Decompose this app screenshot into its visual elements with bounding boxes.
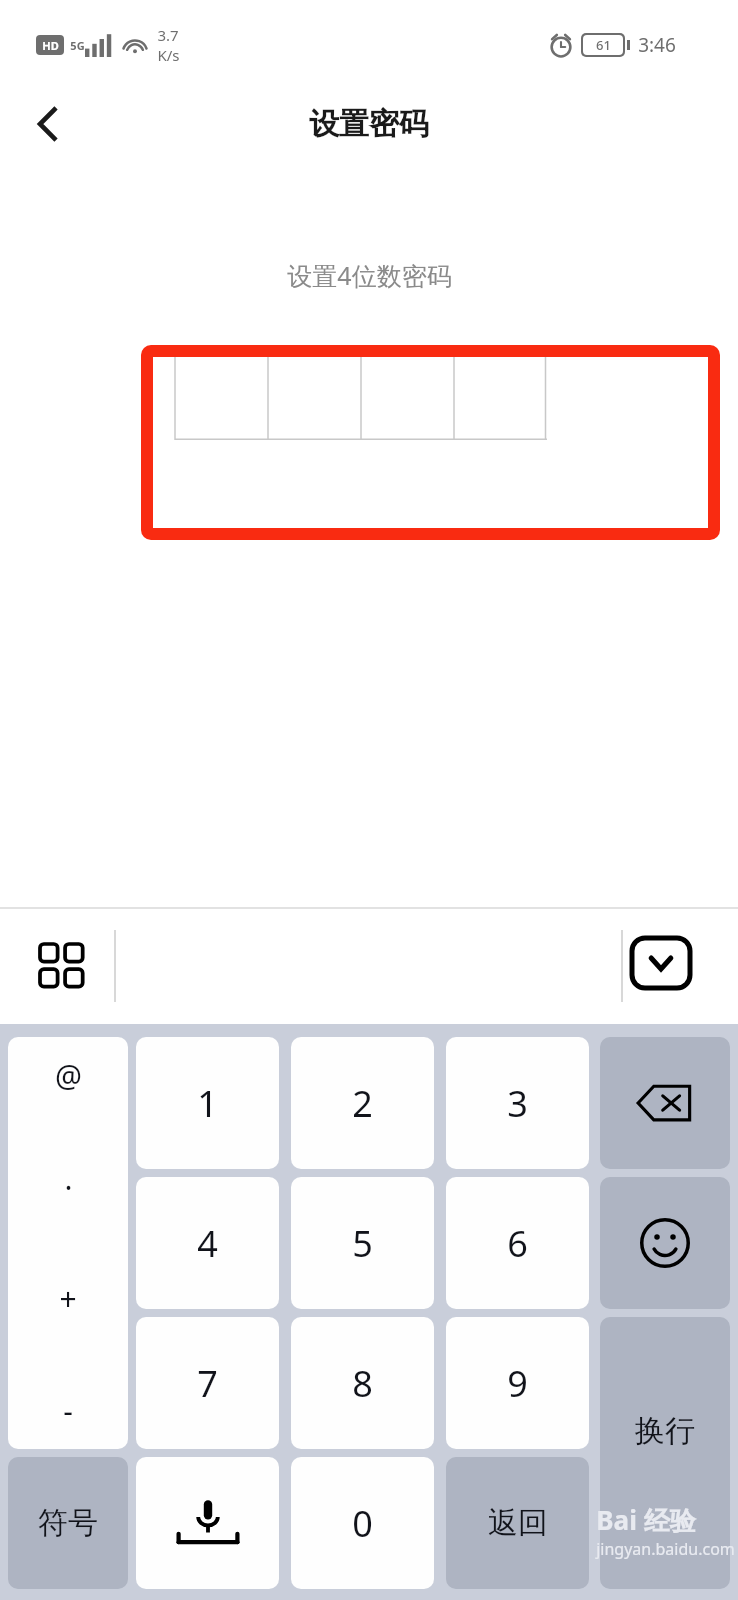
staticText: 换行 xyxy=(635,1412,695,1450)
staticText: 设置4位数密码 xyxy=(287,258,452,292)
button[interactable]: 2 xyxy=(291,1037,434,1169)
button[interactable]: Hide keyboard xyxy=(632,938,690,988)
button[interactable] xyxy=(454,357,547,440)
staticText: jingyan.baidu.com xyxy=(596,1538,735,1560)
staticText: 3 xyxy=(507,1079,528,1128)
staticText: @ xyxy=(55,1055,82,1096)
staticText: 3:46 xyxy=(638,32,676,58)
button[interactable]: Emoji xyxy=(600,1177,730,1309)
staticText: 0 xyxy=(352,1499,373,1548)
staticText: K/s xyxy=(157,45,180,65)
staticText: · xyxy=(64,1167,73,1208)
button[interactable] xyxy=(268,357,361,440)
button[interactable] xyxy=(153,357,708,528)
button[interactable]: 7 xyxy=(136,1317,279,1449)
staticText: - xyxy=(63,1390,73,1431)
staticText: 61 xyxy=(596,36,611,54)
staticText: 5G xyxy=(70,38,85,53)
button[interactable]: 符号 xyxy=(8,1457,128,1589)
button[interactable]: 3 xyxy=(446,1037,589,1169)
staticText: 设置密码 xyxy=(309,105,429,143)
button[interactable]: 0 xyxy=(291,1457,434,1589)
button[interactable]: 换行 xyxy=(600,1317,730,1589)
staticText: Bai 经验 xyxy=(596,1502,696,1538)
button[interactable]: Keyboard layouts xyxy=(24,928,100,1004)
staticText: 6 xyxy=(507,1219,528,1268)
button[interactable]: 返回 xyxy=(446,1457,589,1589)
staticText: 返回 xyxy=(488,1504,548,1542)
button[interactable]: 4 xyxy=(136,1177,279,1309)
button[interactable]: 8 xyxy=(291,1317,434,1449)
staticText: + xyxy=(59,1278,77,1319)
button[interactable]: 1 xyxy=(136,1037,279,1169)
button[interactable]: Back xyxy=(0,76,96,172)
staticText: 5 xyxy=(352,1219,373,1268)
staticText: 4 xyxy=(197,1219,218,1268)
button[interactable]: Space xyxy=(136,1457,279,1589)
staticText: 7 xyxy=(197,1359,218,1408)
button[interactable] xyxy=(175,357,268,440)
staticText: 1 xyxy=(197,1079,218,1128)
button[interactable]: 9 xyxy=(446,1317,589,1449)
staticText: HD xyxy=(42,38,59,53)
button[interactable]: 5 xyxy=(291,1177,434,1309)
staticText: 8 xyxy=(352,1359,373,1408)
staticText: 9 xyxy=(507,1359,528,1408)
button[interactable]: @ xyxy=(8,1037,128,1449)
staticText: 2 xyxy=(352,1079,373,1128)
staticText: 3.7 xyxy=(157,25,179,45)
staticText: 符号 xyxy=(38,1504,98,1542)
button[interactable] xyxy=(361,357,454,440)
button[interactable]: 6 xyxy=(446,1177,589,1309)
button[interactable]: Backspace xyxy=(600,1037,730,1169)
